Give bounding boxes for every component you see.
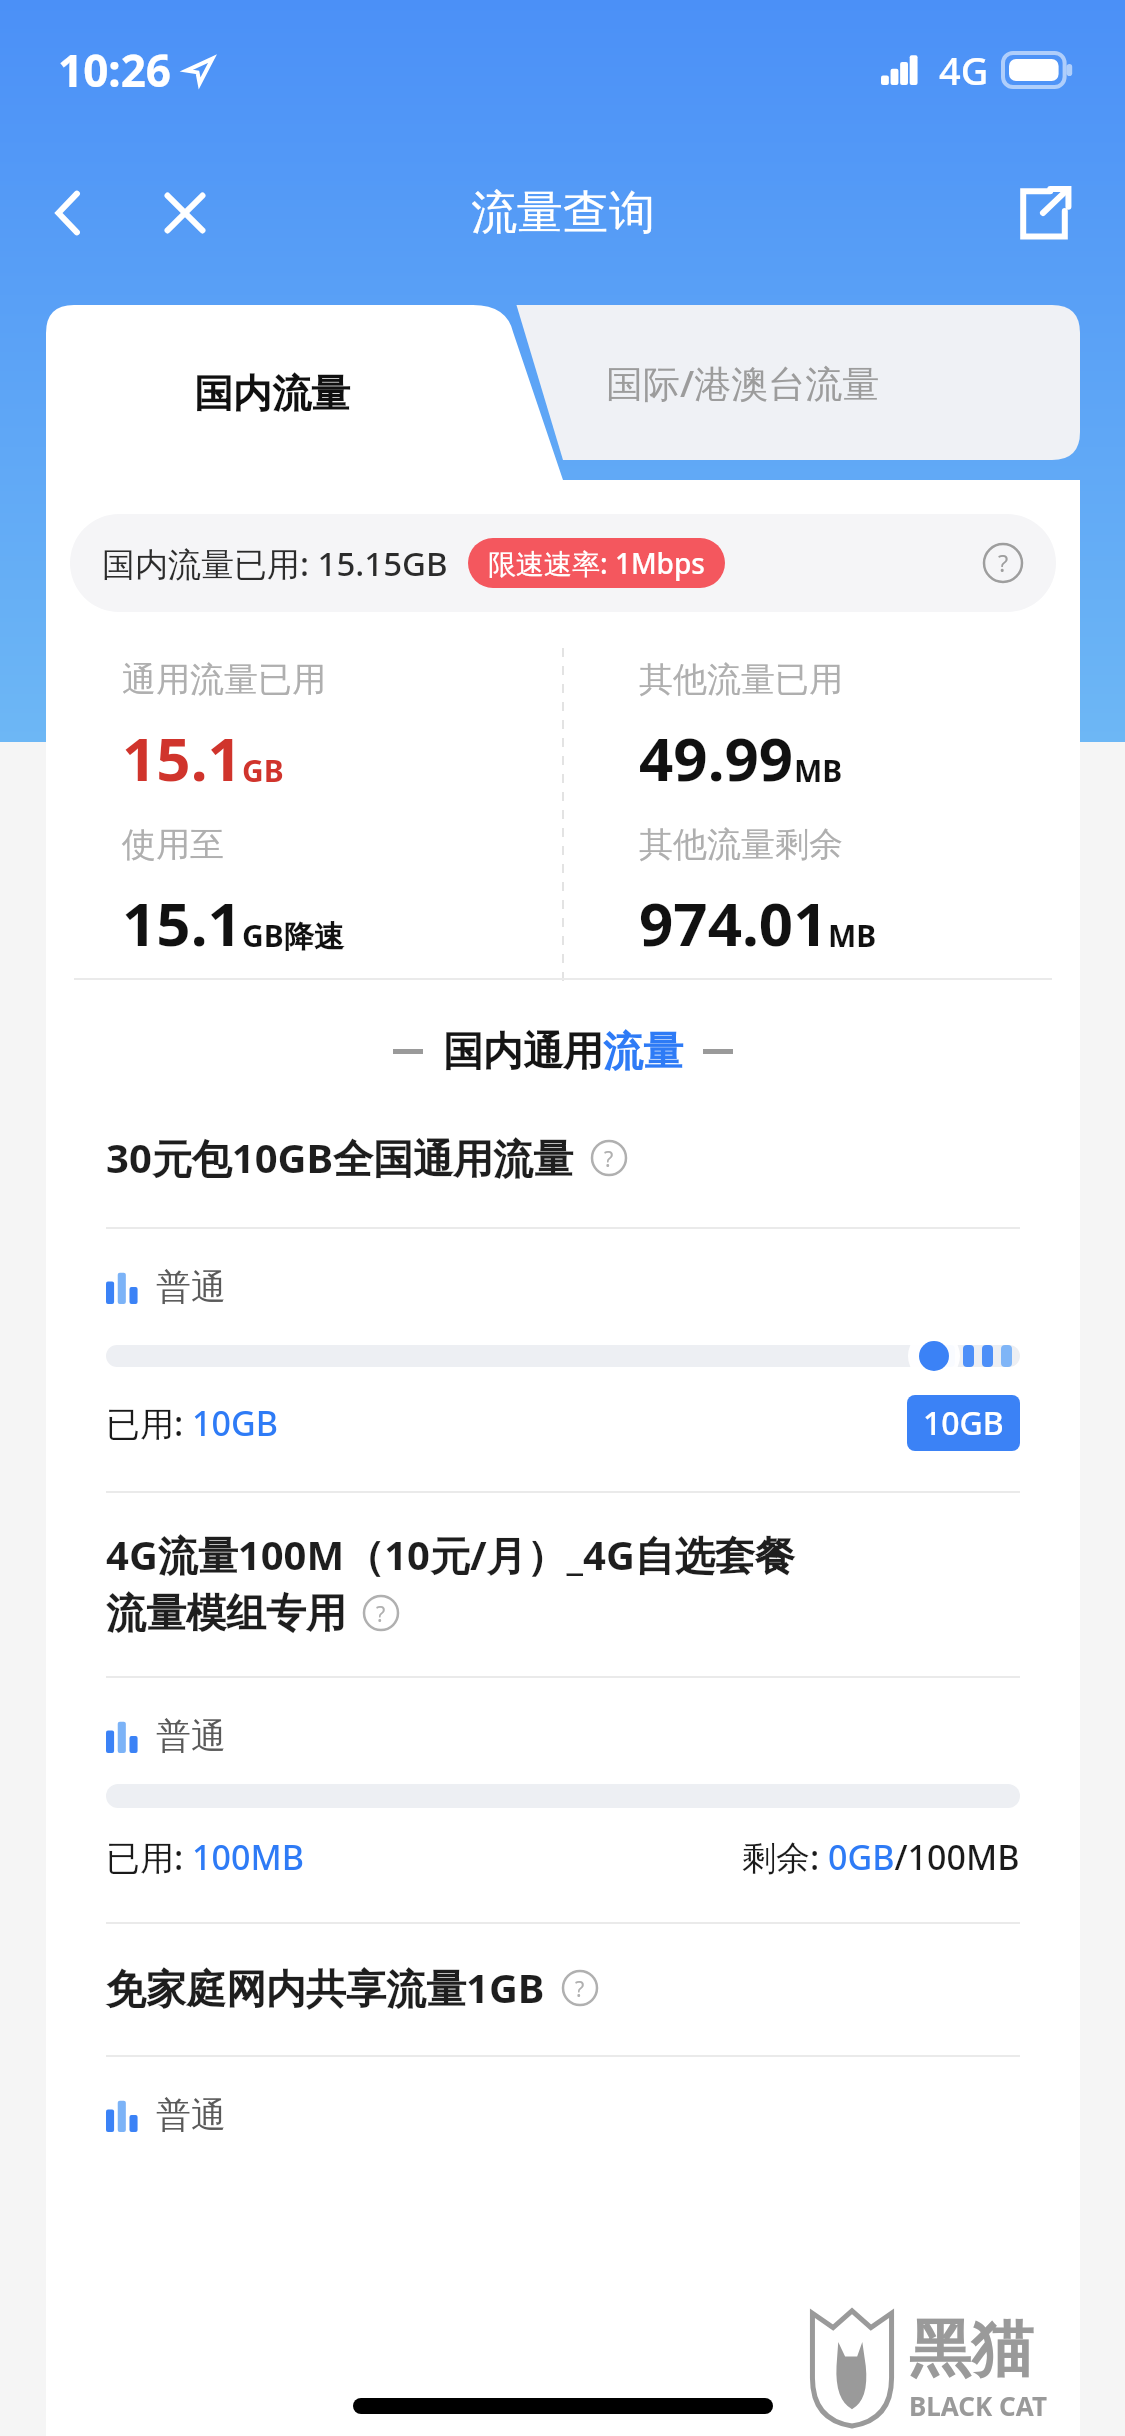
staticText: 4G	[939, 44, 989, 96]
staticText: 15.1	[122, 717, 242, 799]
button[interactable]: 国内流量已用: 15.15GB	[70, 514, 1056, 612]
staticText: 国内通用流量	[443, 1026, 683, 1076]
staticText: ?	[575, 1974, 585, 2003]
staticText: 普通	[156, 2093, 226, 2137]
staticText: 其他流量已用	[639, 658, 843, 701]
staticText: 黑猫	[909, 2310, 1033, 2388]
staticText: 国内流量已用: 15.15GB	[102, 541, 448, 586]
staticText: MB	[828, 915, 877, 956]
staticText: ?	[998, 547, 1009, 579]
staticText: 剩余: 0GB/100MB	[742, 1834, 1020, 1880]
staticText: MB	[794, 750, 843, 791]
staticText: 10GB	[923, 1401, 1004, 1445]
button[interactable]: 4G流量100M（10元/月）_4G自选套餐	[106, 1527, 1020, 1638]
staticText: 流量查询	[471, 184, 655, 242]
staticText: 其他流量剩余	[639, 823, 843, 866]
button[interactable]: 免家庭网内共享流量1GB	[106, 1960, 1020, 2015]
staticText: ?	[604, 1144, 614, 1173]
button[interactable]: 国内流量	[194, 369, 350, 418]
staticText: 974.01	[639, 882, 828, 964]
button[interactable]: Back	[24, 168, 114, 258]
staticText: 49.99	[639, 717, 794, 799]
staticText: ?	[376, 1599, 386, 1628]
button[interactable]: Share	[999, 168, 1089, 258]
staticText: GB降速	[242, 915, 344, 956]
staticText: 10:26	[58, 40, 172, 100]
staticText: GB	[242, 750, 284, 791]
staticText: 普通	[156, 1265, 226, 1309]
staticText: 限速速率: 1Mbps	[488, 544, 705, 582]
button[interactable]: Close	[140, 168, 230, 258]
staticText: 30元包10GB全国通用流量	[106, 1130, 574, 1185]
staticText: 通用流量已用	[122, 658, 326, 701]
staticText: 15.1	[122, 882, 242, 964]
staticText: BLACK CAT	[909, 2388, 1047, 2423]
staticText: 使用至	[122, 823, 224, 866]
staticText: 普通	[156, 1714, 226, 1758]
staticText: 已用: 10GB	[106, 1400, 278, 1446]
button[interactable]: 30元包10GB全国通用流量	[106, 1130, 1020, 1185]
staticText: 免家庭网内共享流量1GB	[106, 1960, 545, 2015]
staticText: 4G流量100M（10元/月）_4G自选套餐	[106, 1527, 795, 1582]
button[interactable]: 国际/港澳台流量	[606, 357, 880, 408]
staticText: 流量模组专用	[106, 1588, 346, 1638]
staticText: 已用: 100MB	[106, 1834, 304, 1880]
